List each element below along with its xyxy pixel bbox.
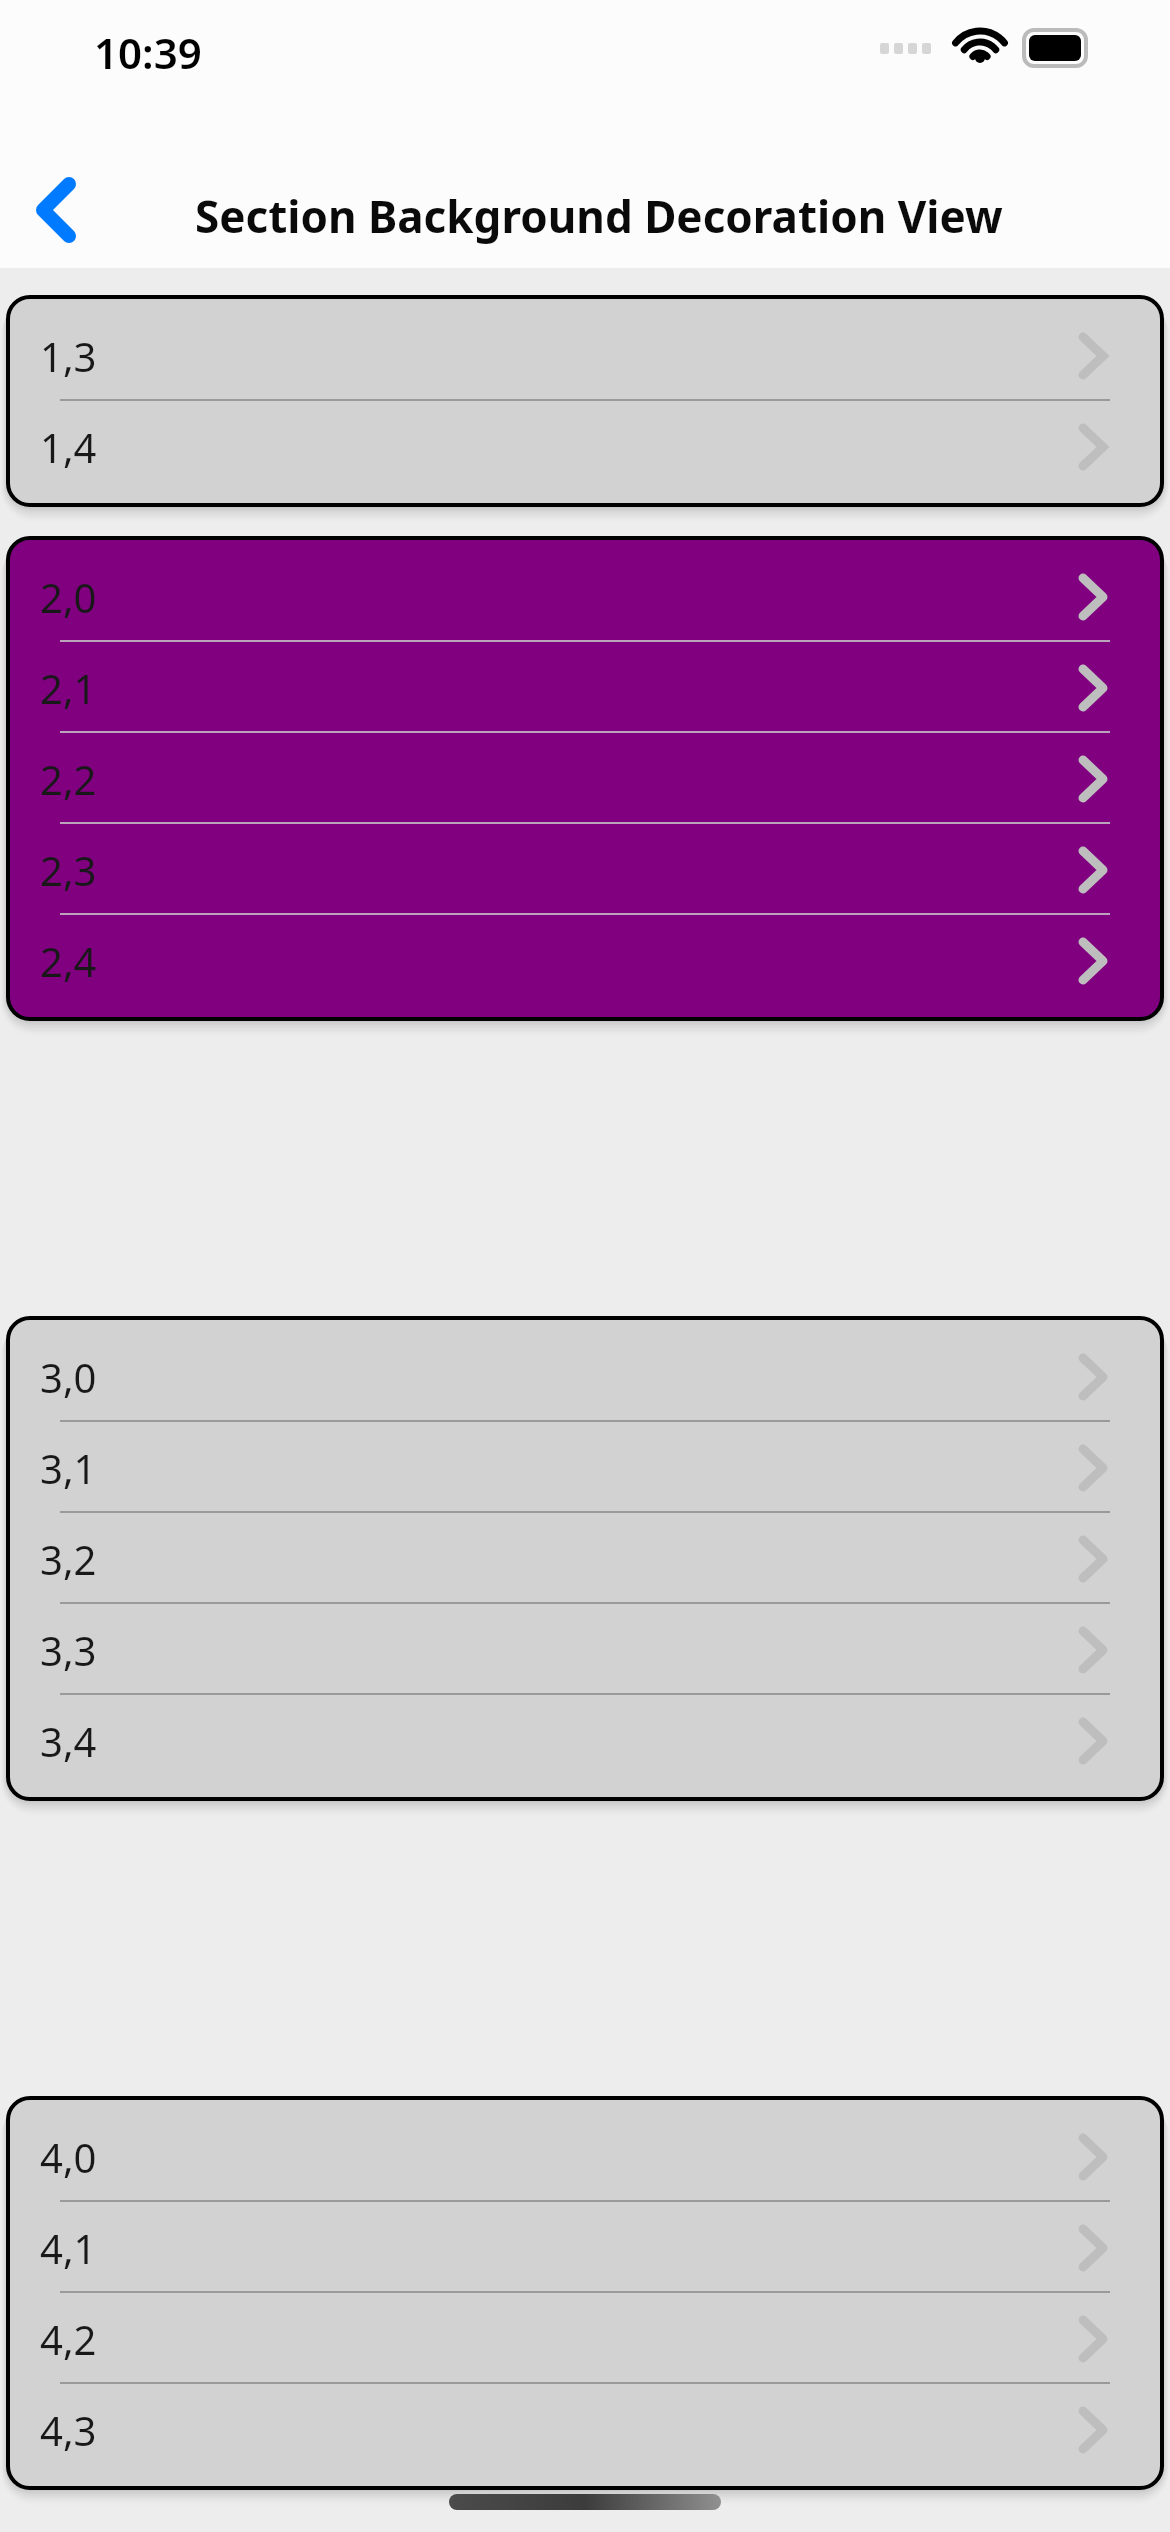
button[interactable]: 1,4 xyxy=(8,401,1162,492)
button[interactable]: 2,1 xyxy=(8,642,1162,733)
button[interactable]: 3,0 xyxy=(8,1331,1162,1422)
staticText: 2,1 xyxy=(40,661,97,715)
button[interactable]: 1,3 xyxy=(8,310,1162,401)
staticText: 3,4 xyxy=(40,1714,97,1768)
staticText: 3,0 xyxy=(40,1350,97,1404)
staticText: 4,0 xyxy=(40,2130,97,2184)
staticText: Section Background Decoration View xyxy=(195,186,1003,246)
staticText: 2,0 xyxy=(40,570,97,624)
staticText: 4,1 xyxy=(40,2221,97,2275)
staticText: 1,4 xyxy=(40,420,97,474)
button[interactable]: 4,3 xyxy=(8,2384,1162,2475)
button[interactable]: Back xyxy=(0,158,112,262)
staticText: 4,3 xyxy=(40,2403,97,2457)
staticText: 2,4 xyxy=(40,934,97,988)
button[interactable]: 2,0 xyxy=(8,551,1162,642)
staticText: 3,2 xyxy=(40,1532,97,1586)
staticText: 4,2 xyxy=(40,2312,97,2366)
staticText: 1,3 xyxy=(40,329,97,383)
staticText: 3,1 xyxy=(40,1441,97,1495)
button[interactable]: 3,1 xyxy=(8,1422,1162,1513)
button[interactable]: 3,4 xyxy=(8,1695,1162,1786)
staticText: 3,3 xyxy=(40,1623,97,1677)
button[interactable]: 2,3 xyxy=(8,824,1162,915)
button[interactable]: 2,4 xyxy=(8,915,1162,1006)
staticText: 2,2 xyxy=(40,752,97,806)
button[interactable]: 3,3 xyxy=(8,1604,1162,1695)
button[interactable]: 4,2 xyxy=(8,2293,1162,2384)
button[interactable]: 3,2 xyxy=(8,1513,1162,1604)
staticText: 10:39 xyxy=(94,24,202,81)
button[interactable]: 2,2 xyxy=(8,733,1162,824)
button[interactable]: 4,0 xyxy=(8,2111,1162,2202)
button[interactable]: 4,1 xyxy=(8,2202,1162,2293)
staticText: 2,3 xyxy=(40,843,97,897)
